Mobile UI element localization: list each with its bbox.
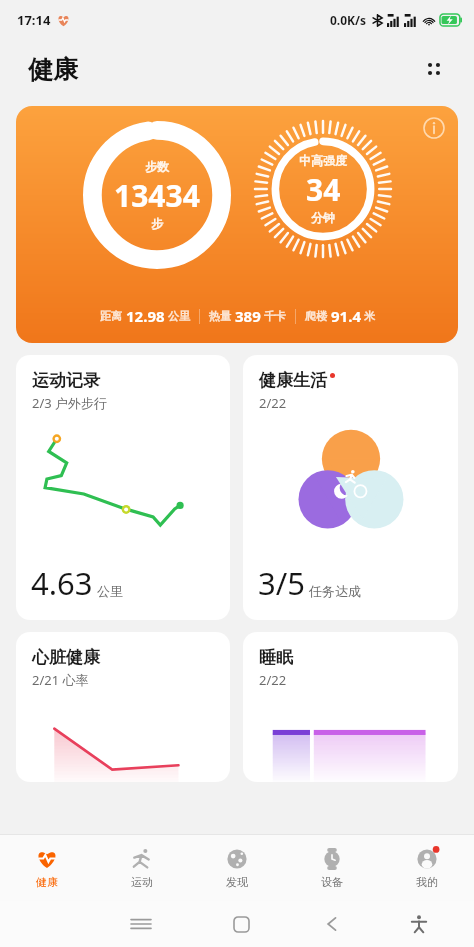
staticText: 米 [364, 309, 375, 323]
staticText: 发现 [226, 875, 248, 889]
other: Back [324, 916, 340, 932]
staticText: 步 [151, 216, 163, 231]
staticText: 13434 [114, 175, 200, 216]
staticText: 任务达成 [309, 583, 361, 599]
button[interactable]: 设备 [284, 835, 379, 901]
staticText: 健康生活 [259, 370, 327, 391]
staticText: 91.4 [331, 306, 361, 326]
staticText: 公里 [168, 309, 190, 323]
staticText: 公里 [97, 583, 123, 599]
button[interactable]: 心脏健康 [16, 632, 230, 782]
button[interactable]: 发现 [189, 835, 284, 901]
staticText: 2/22 [259, 671, 287, 689]
button[interactable]: 运动 [94, 835, 189, 901]
staticText: 千卡 [264, 309, 286, 323]
other: Home [233, 916, 250, 933]
button[interactable]: Info [420, 114, 448, 142]
staticText: 3/5 [258, 562, 305, 604]
other: Accessibility [410, 915, 428, 933]
button[interactable]: 运动记录 [16, 355, 230, 620]
staticText: 12.98 [126, 306, 165, 326]
button[interactable]: Info [16, 106, 458, 343]
button[interactable]: 健康 [0, 835, 94, 901]
button[interactable]: 健康生活 [243, 355, 458, 620]
staticText: 运动 [131, 875, 153, 889]
button[interactable]: 我的 [379, 835, 474, 901]
staticText: 2/21 心率 [32, 671, 89, 689]
button[interactable]: 睡眠 [243, 632, 458, 782]
staticText: 389 [235, 306, 261, 326]
staticText: 心脏健康 [32, 647, 100, 668]
staticText: 我的 [416, 875, 438, 889]
staticText: 爬楼 [305, 309, 327, 323]
staticText: 睡眠 [259, 647, 293, 668]
other: Recents [131, 914, 151, 934]
staticText: 中高强度 [299, 153, 347, 168]
staticText: 健康 [36, 875, 58, 889]
button[interactable]: More apps [414, 49, 454, 89]
staticText: 热量 [209, 309, 231, 323]
staticText: 运动记录 [32, 370, 100, 391]
staticText: 分钟 [311, 210, 335, 225]
staticText: 4.63 [31, 562, 93, 604]
staticText: 健康 [28, 54, 78, 85]
staticText: 0.0K/s [330, 12, 367, 28]
staticText: 距离 [100, 309, 122, 323]
staticText: 2/22 [259, 394, 287, 412]
staticText: 17:14 [17, 11, 51, 29]
staticText: 34 [306, 169, 341, 210]
staticText: 设备 [321, 875, 343, 889]
staticText: 步数 [145, 159, 169, 174]
staticText: 2/3 户外步行 [32, 394, 108, 412]
